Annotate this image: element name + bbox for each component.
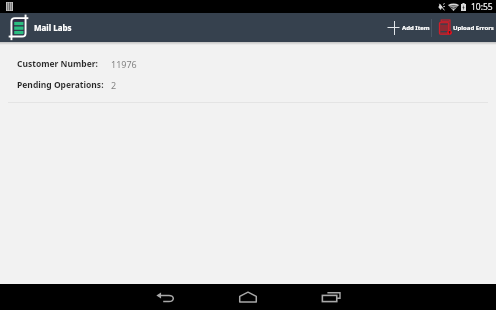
staticText: Customer Number: [17, 58, 98, 70]
staticText: 10:55 [471, 1, 493, 13]
button[interactable]: Mail Labs [0, 13, 72, 42]
button[interactable]: Home [224, 284, 272, 310]
staticText: 2 [111, 79, 117, 91]
button[interactable]: Back [141, 284, 189, 310]
button[interactable]: Add Item [377, 13, 431, 42]
button[interactable]: Recent apps [307, 284, 355, 310]
staticText: Upload Errors [453, 24, 494, 32]
staticText: Pending Operations: [17, 79, 104, 91]
staticText: 11976 [111, 58, 137, 70]
button[interactable]: Upload Errors [432, 13, 496, 42]
staticText: Add Item [402, 24, 430, 32]
staticText: Mail Labs [34, 22, 72, 33]
